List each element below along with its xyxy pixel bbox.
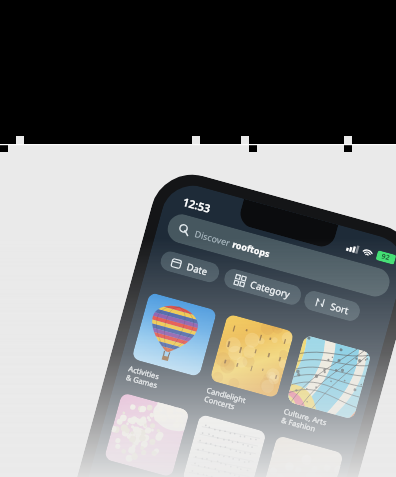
staticText: Culture, Arts & Fashion xyxy=(280,406,328,436)
staticText: 92 xyxy=(380,251,392,263)
button[interactable]: Activities & Games xyxy=(125,292,217,400)
button[interactable] xyxy=(259,435,344,477)
staticText: Category xyxy=(249,278,292,301)
staticText: Candlelight Concerts xyxy=(203,385,248,414)
staticText: rooftops xyxy=(231,237,272,259)
button[interactable] xyxy=(104,392,190,477)
button[interactable]: Sort xyxy=(302,289,362,323)
staticText: 12:53 xyxy=(181,194,213,216)
staticText: Date xyxy=(185,260,210,279)
button[interactable]: Category xyxy=(222,267,303,307)
button[interactable] xyxy=(182,414,267,477)
staticText: Discover xyxy=(193,227,234,249)
button[interactable]: Date xyxy=(158,249,222,284)
staticText: Activities & Games xyxy=(125,363,161,390)
button[interactable]: Search xyxy=(164,211,393,300)
button[interactable]: Candlelight Concerts xyxy=(203,314,294,422)
staticText: Sort xyxy=(329,300,351,317)
other: Search xyxy=(177,223,191,236)
button[interactable]: Culture, Arts & Fashion xyxy=(280,335,371,443)
